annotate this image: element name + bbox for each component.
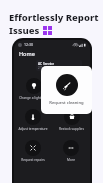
staticText: 12:30 bbox=[24, 42, 33, 47]
other: Adjust temperature bbox=[29, 113, 37, 121]
button[interactable]: Request cleaning bbox=[57, 77, 85, 101]
staticText: AC Service bbox=[38, 62, 55, 66]
staticText: Issues bbox=[9, 24, 40, 37]
staticText: Adjust temperature bbox=[18, 127, 48, 131]
other: Request repairs bbox=[29, 144, 37, 152]
staticText: Request repairs bbox=[21, 158, 45, 162]
other: More bbox=[67, 144, 75, 152]
button[interactable]: Change a lightbulb bbox=[18, 77, 49, 101]
other: Request cleaning bbox=[62, 80, 73, 91]
staticText: Request cleaning bbox=[49, 100, 84, 106]
staticText: Home bbox=[19, 50, 35, 57]
staticText: Change a lightbulb bbox=[19, 96, 48, 100]
other: Request cleaning bbox=[67, 82, 75, 90]
staticText: 2 Tasks open bbox=[38, 66, 55, 69]
staticText: More bbox=[67, 158, 75, 162]
button[interactable]: More bbox=[62, 139, 80, 163]
staticText: Effortlessly Report bbox=[9, 11, 99, 24]
staticText: Restock supplies bbox=[59, 127, 84, 131]
button[interactable]: Adjust temperature bbox=[17, 108, 49, 132]
button[interactable]: Request cleaning bbox=[41, 66, 92, 114]
button[interactable]: AC Service bbox=[36, 60, 82, 71]
button[interactable]: Restock supplies bbox=[58, 108, 85, 132]
other: Restock supplies bbox=[68, 113, 76, 121]
other: Change a lightbulb bbox=[30, 82, 38, 90]
button[interactable]: Request repairs bbox=[20, 139, 46, 163]
